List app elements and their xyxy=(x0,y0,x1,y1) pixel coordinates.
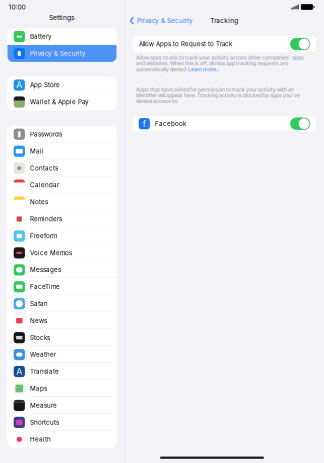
button[interactable]: Notes xyxy=(7,194,116,210)
staticText: Privacy & Security xyxy=(137,17,193,24)
staticText: News xyxy=(30,317,47,324)
button[interactable]: Contacts xyxy=(7,160,116,177)
staticText: Maps xyxy=(30,385,47,392)
button[interactable]: Calendar xyxy=(7,177,116,193)
button[interactable]: Allow Apps to Request to Track xyxy=(132,36,316,52)
staticText: Mail xyxy=(30,147,44,155)
button[interactable]: Wallet & Apple Pay xyxy=(7,93,116,110)
staticText: A xyxy=(16,80,22,90)
staticText: Shortcuts xyxy=(30,419,59,426)
button[interactable]: A xyxy=(7,363,116,380)
button[interactable]: Measure xyxy=(7,397,116,414)
button[interactable]: Messages xyxy=(7,261,116,278)
button[interactable]: Freeform xyxy=(7,227,116,244)
staticText: Stocks xyxy=(30,334,50,341)
button[interactable]: Voice Memos xyxy=(7,244,116,261)
button[interactable]: Mail xyxy=(7,143,116,160)
staticText: denied access to. xyxy=(136,98,178,104)
staticText: Notes xyxy=(30,198,48,206)
button[interactable]: Stocks xyxy=(7,329,116,346)
staticText: Translate xyxy=(30,368,59,375)
staticText: Weather xyxy=(30,351,56,358)
staticText: Allow Apps to Request to Track xyxy=(139,40,232,48)
button[interactable]: Health xyxy=(7,431,116,448)
staticText: automatically denied. xyxy=(136,66,188,72)
staticText: Learn more... xyxy=(188,66,219,72)
button[interactable]: Learn more... xyxy=(188,66,219,72)
staticText: 10:00 xyxy=(8,3,25,11)
staticText: Passwords xyxy=(30,130,62,138)
button[interactable]: Privacy & Security xyxy=(125,13,197,29)
button[interactable]: Maps xyxy=(7,380,116,397)
staticText: Safari xyxy=(30,300,48,308)
staticText: Freeform xyxy=(30,232,57,240)
button[interactable]: Weather xyxy=(7,346,116,363)
staticText: Tracking xyxy=(210,17,238,24)
staticText: Voice Memos xyxy=(30,249,72,257)
staticText: Allow apps to ask to track your activity… xyxy=(136,54,304,61)
staticText: and websites. When this is off, all new … xyxy=(136,60,288,66)
staticText: Wallet & Apple Pay xyxy=(30,98,89,106)
staticText: A xyxy=(16,366,22,377)
staticText: identifier will appear here. Tracking ac… xyxy=(136,92,300,98)
staticText: Contacts xyxy=(30,164,58,172)
button[interactable]: A xyxy=(7,77,116,93)
staticText: Settings xyxy=(49,14,75,22)
button[interactable]: Battery xyxy=(7,28,116,45)
button[interactable]: News xyxy=(7,312,116,329)
staticText: Messages xyxy=(30,266,61,274)
staticText: Facebook xyxy=(155,120,186,127)
staticText: Health xyxy=(30,436,51,443)
staticText: Calendar xyxy=(30,181,59,189)
staticText: Reminders xyxy=(30,215,62,223)
staticText: Measure xyxy=(30,402,57,409)
button[interactable]: Shortcuts xyxy=(7,414,116,431)
staticText: FaceTime xyxy=(30,283,60,291)
staticText: Apps that have asked for permission to t… xyxy=(136,86,294,93)
button[interactable]: f xyxy=(132,116,316,131)
button[interactable]: Safari xyxy=(7,295,116,312)
button[interactable]: FaceTime xyxy=(7,278,116,295)
staticText: Privacy & Security xyxy=(30,50,86,57)
button[interactable]: Passwords xyxy=(7,126,116,143)
staticText: App Store xyxy=(30,81,60,89)
button[interactable]: Privacy & Security xyxy=(7,45,116,62)
staticText: f xyxy=(143,118,146,129)
staticText: Battery xyxy=(30,33,52,40)
button[interactable]: Reminders xyxy=(7,210,116,227)
